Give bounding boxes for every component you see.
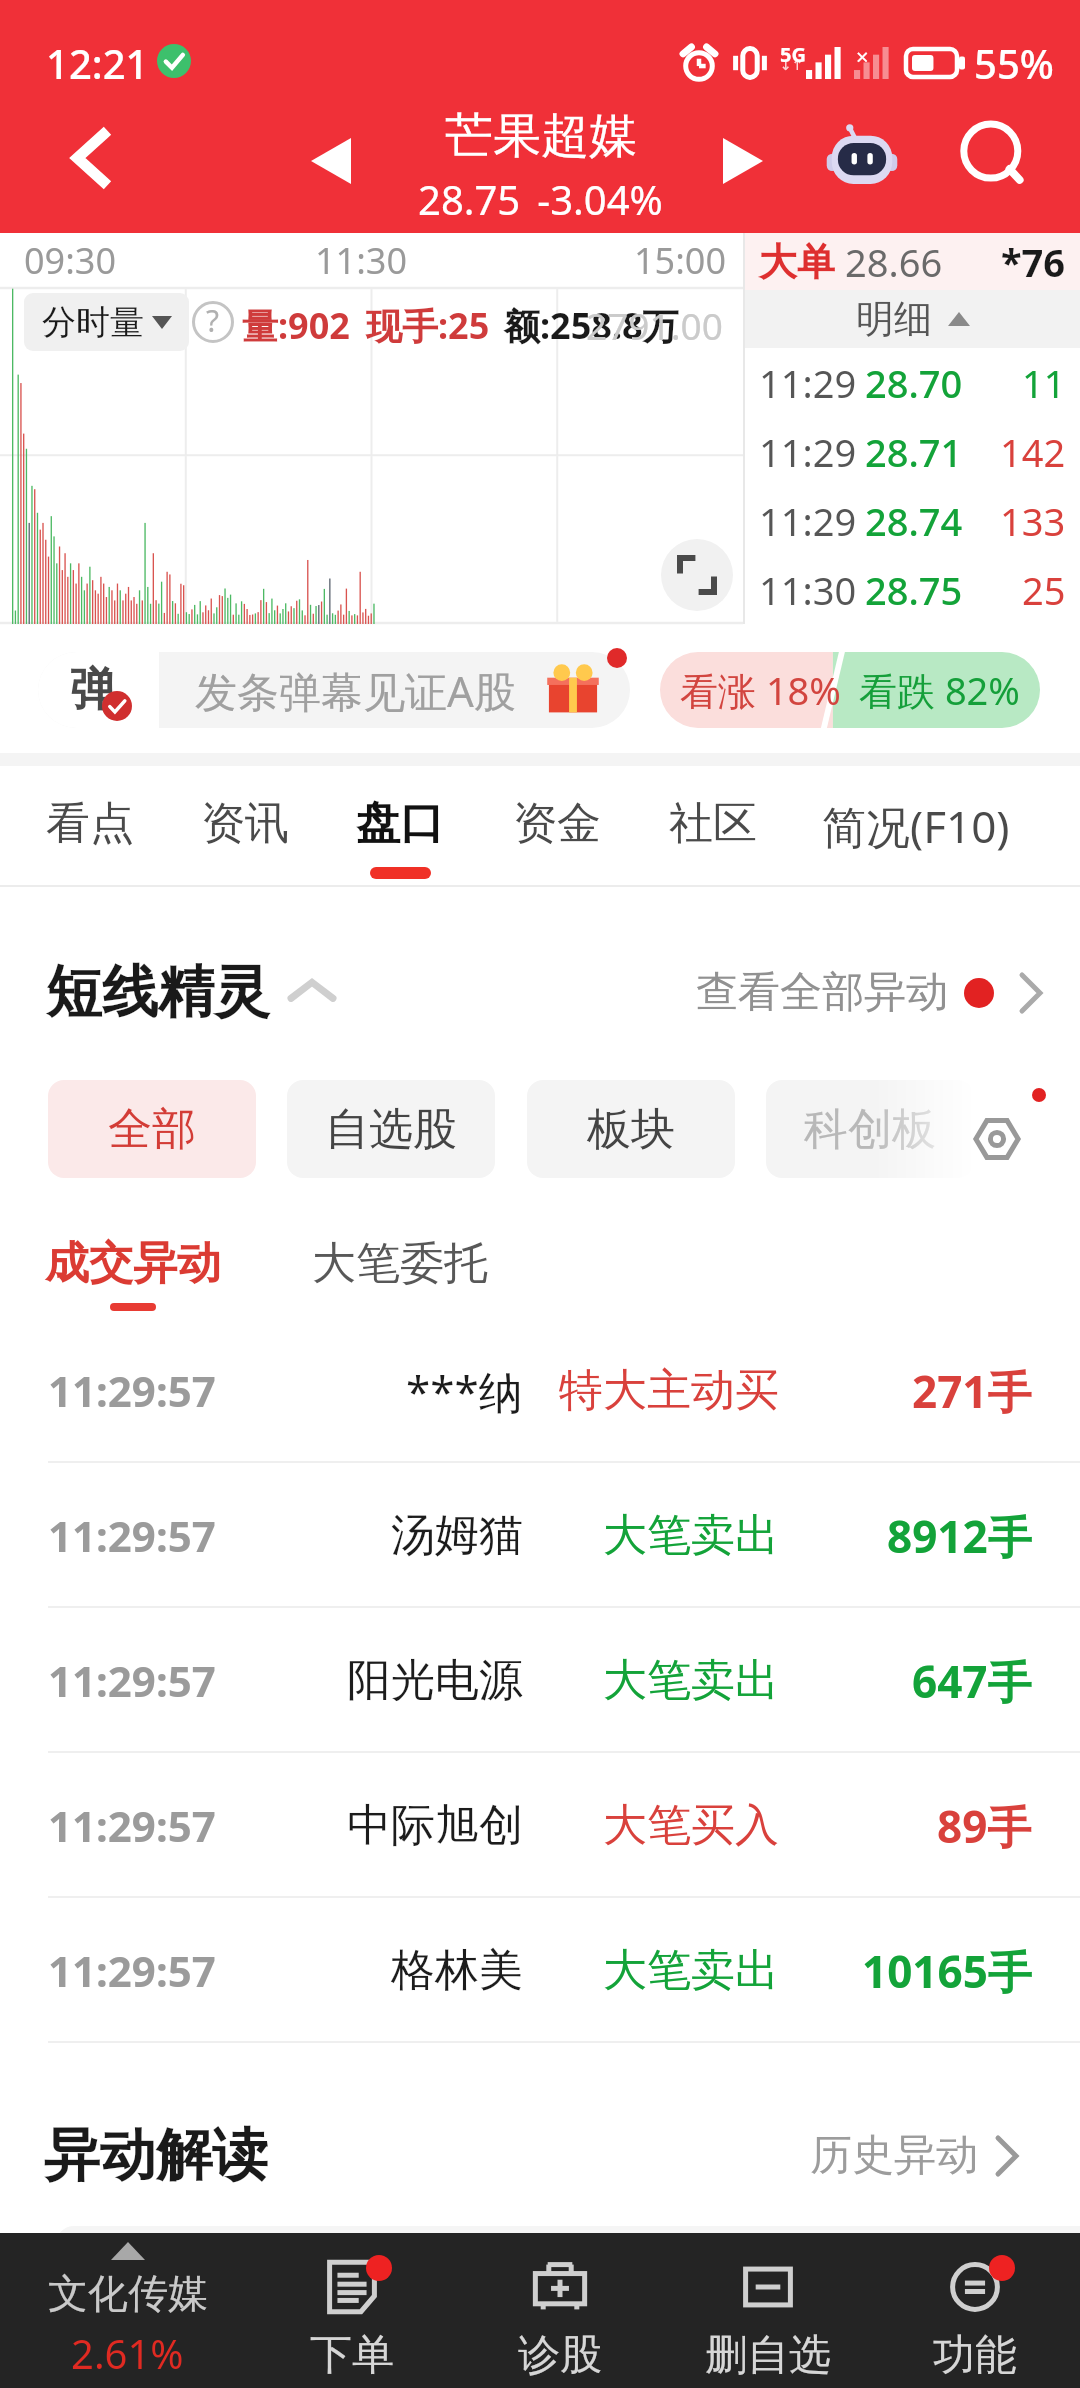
button[interactable]: 大笔委托 [305,1236,495,1316]
staticText: 28.70 [865,357,963,409]
button[interactable]: Fullscreen [661,539,733,611]
staticText: 大笔委托 [312,1236,488,1291]
button[interactable]: AI assistant [814,110,910,206]
staticText: 额:258.8万 [504,301,679,350]
staticText: 中际旭创 [347,1798,523,1853]
staticText: 11:29 [759,495,857,547]
staticText: 发条弹幕见证A股 [195,662,516,719]
button[interactable]: 文化传媒 [0,2233,255,2388]
staticText: 删自选 [705,2329,831,2382]
staticText: *76 [1001,236,1066,288]
button[interactable]: 看涨 18% [660,652,1040,728]
staticText: 09:30 [24,236,117,285]
button[interactable]: 弹 [38,652,630,728]
staticText: 自选股 [325,1102,457,1157]
staticText: 看点 [46,796,134,851]
staticText: 大笔卖出 [603,1508,779,1563]
button[interactable]: 看点 [0,766,220,884]
staticText: 诊股 [518,2329,602,2382]
staticText: 大笔买入 [603,1798,779,1853]
staticText: 11:29 [759,426,857,478]
staticText: ***纳 [406,1361,523,1421]
button[interactable]: 下单 [248,2233,456,2388]
staticText: ↓↑ [780,57,804,73]
button[interactable]: 11:29:57 [0,1608,1080,1753]
button[interactable]: 诊股 [456,2233,664,2388]
button[interactable]: 资金 [427,766,687,884]
staticText: 看跌 82% [859,664,1020,716]
staticText: 资讯 [201,796,289,851]
staticText: 全部 [108,1102,196,1157]
staticText: 28.74 [865,495,963,547]
button[interactable]: Next stock [700,118,786,204]
button[interactable]: 盘口 [270,766,530,884]
button[interactable]: 简况(F10) [786,766,1046,884]
button[interactable]: 查看全部异动 [696,966,1042,1019]
button[interactable]: 社区 [583,766,843,884]
staticText: 汤姆猫 [391,1508,523,1563]
staticText: 25 [1022,564,1066,616]
staticText: ? [206,300,220,341]
staticText: 10165手 [862,1941,1032,2001]
staticText: 11:29 [759,357,857,409]
staticText: 28.71 [865,426,963,478]
button[interactable]: 功能 [871,2233,1079,2388]
staticText: 盘口 [356,796,444,851]
button[interactable]: 11:29:57 [0,1318,1080,1463]
button[interactable]: 历史异动 [810,2129,1018,2182]
button[interactable]: 科创板 [766,1080,974,1178]
staticText: 5G [780,41,806,68]
button[interactable]: 删自选 [664,2233,872,2388]
staticText: 12:21 [46,36,149,90]
button[interactable]: Back [36,108,146,208]
button[interactable]: 全部 [48,1080,256,1178]
button[interactable]: Previous stock [288,118,374,204]
button[interactable]: 明细 [745,290,1080,348]
staticText: 格林美 [391,1943,523,1998]
staticText: 异动解读 [44,2120,268,2191]
button[interactable]: 11:29:57 [0,1753,1080,1898]
staticText: 15:00 [634,236,727,285]
staticText: 看涨 18% [680,664,841,716]
staticText: 11 [1022,357,1066,409]
staticText: 板块 [587,1102,675,1157]
staticText: 11:29:57 [48,1507,216,1564]
button[interactable]: Settings [975,1110,1041,1168]
staticText: 142 [1000,426,1066,478]
staticText: 大笔卖出 [603,1943,779,1998]
staticText: 现手:25 [366,301,490,350]
button[interactable]: 分时量 [24,293,189,351]
button[interactable]: Search [950,111,1046,207]
button[interactable]: 成交异动 [38,1236,228,1316]
staticText: 55% [974,36,1054,90]
staticText: 28.66 [845,236,943,288]
staticText: 271手 [912,1361,1032,1421]
staticText: 11:29:57 [48,1942,216,1999]
staticText: 成交异动 [45,1236,221,1291]
staticText: 133 [1000,495,1066,547]
staticText: 量:902 [242,301,350,350]
staticText: 功能 [933,2329,1017,2382]
staticText: 文化传媒 [48,2268,208,2318]
staticText: 647手 [912,1651,1032,1711]
button[interactable]: 自选股 [287,1080,495,1178]
staticText: 历史异动 [810,2129,978,2182]
staticText: 11:29:57 [48,1797,216,1854]
staticText: 11:29:57 [48,1362,216,1419]
button[interactable]: 11:29:57 [0,1463,1080,1608]
staticText: 大笔卖出 [603,1653,779,1708]
staticText: 社区 [669,796,757,851]
staticText: 8912手 [887,1506,1032,1566]
staticText: 芒果超媒 [445,106,637,166]
staticText: 科创板 [804,1102,936,1157]
staticText: 28.75 -3.04% [418,172,663,226]
staticText: 下单 [310,2329,394,2382]
button[interactable]: 板块 [527,1080,735,1178]
button[interactable]: 11:29:57 [0,1898,1080,2043]
staticText: 2.61% [71,2326,184,2380]
staticText: × [856,41,869,71]
staticText: 2791.00 [586,300,723,350]
staticText: 11:29:57 [48,1652,216,1709]
staticText: 分时量 [42,301,144,344]
button[interactable]: 资讯 [115,766,375,884]
